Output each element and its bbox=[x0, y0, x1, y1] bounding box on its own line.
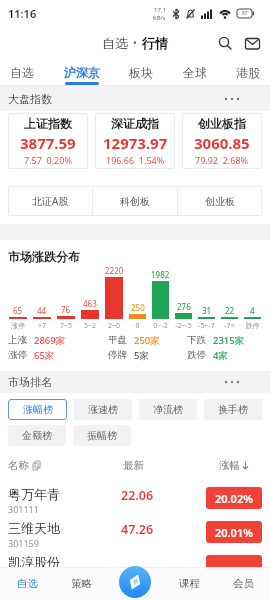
button[interactable]: 沪深京 bbox=[64, 59, 100, 85]
button[interactable]: 涨幅榜 bbox=[8, 399, 67, 420]
button[interactable]: 课程 bbox=[162, 567, 216, 600]
staticText: 平盘 bbox=[108, 334, 127, 346]
staticText: 最新 bbox=[123, 459, 144, 472]
button[interactable]: 全球 bbox=[183, 59, 207, 85]
staticText: >7 bbox=[30, 321, 54, 331]
staticText: 2~0 bbox=[102, 321, 126, 331]
staticText: 65 bbox=[13, 305, 23, 316]
button[interactable]: 涨速榜 bbox=[74, 399, 132, 420]
button[interactable]: 会员 bbox=[216, 567, 270, 600]
staticText: 17.1 bbox=[154, 6, 166, 14]
button[interactable] bbox=[119, 566, 151, 598]
staticText: 5家 bbox=[134, 349, 149, 362]
staticText: 下跌 bbox=[187, 334, 206, 346]
staticText: 0 bbox=[126, 321, 149, 331]
button[interactable]: 自选 bbox=[10, 59, 34, 85]
button[interactable]: 三维天地 bbox=[8, 517, 262, 551]
staticText: 创业板指 bbox=[198, 116, 246, 131]
staticText: 12973.97 bbox=[103, 133, 168, 153]
staticText: 涨幅榜 bbox=[23, 403, 53, 416]
button[interactable]: 科创板 bbox=[93, 186, 177, 216]
button[interactable]: 北证A股 bbox=[8, 186, 92, 216]
staticText: 20.01% bbox=[215, 525, 253, 540]
button[interactable]: 振幅榜 bbox=[73, 425, 131, 446]
staticText: 凯淳股份 bbox=[8, 554, 60, 570]
staticText: 创业板 bbox=[205, 195, 235, 208]
staticText: 31 bbox=[202, 305, 212, 316]
staticText: 65家 bbox=[34, 349, 55, 362]
button[interactable]: 上证指数 bbox=[8, 113, 88, 169]
staticText: 金额榜 bbox=[22, 429, 52, 442]
staticText: 涨速榜 bbox=[88, 403, 118, 416]
staticText: 名称 bbox=[8, 459, 29, 472]
staticText: 463 bbox=[83, 298, 97, 309]
button[interactable]: 策略 bbox=[54, 567, 108, 600]
staticText: 250家 bbox=[134, 334, 160, 347]
staticText: 上证指数 bbox=[24, 116, 72, 131]
button[interactable] bbox=[245, 37, 260, 50]
staticText: 2315家 bbox=[213, 334, 245, 347]
staticText: 课程 bbox=[179, 577, 200, 590]
staticText: 北证A股 bbox=[32, 194, 69, 208]
staticText: 行情 bbox=[142, 35, 168, 51]
staticText: 4家 bbox=[213, 349, 228, 362]
staticText: 沪深京 bbox=[64, 65, 100, 80]
staticText: 跌停 bbox=[241, 321, 264, 330]
staticText: 44 bbox=[37, 305, 47, 316]
staticText: 2220 bbox=[105, 265, 124, 276]
staticText: 涨停 bbox=[6, 321, 30, 330]
staticText: 276 bbox=[177, 301, 191, 312]
button[interactable]: 金额榜 bbox=[8, 425, 66, 446]
button[interactable] bbox=[218, 36, 232, 50]
staticText: 301111 bbox=[8, 503, 39, 515]
button[interactable]: 港股 bbox=[236, 59, 260, 85]
staticText: 自选 bbox=[10, 65, 34, 80]
staticText: 47.26 bbox=[121, 521, 154, 538]
button[interactable]: 自选 bbox=[0, 567, 54, 600]
button[interactable]: 粤万年青 bbox=[8, 483, 262, 517]
staticText: 自选 bbox=[102, 35, 128, 51]
staticText: 20.02% bbox=[215, 491, 253, 506]
staticText: 跌停 bbox=[187, 349, 206, 361]
button[interactable]: 凯淳股份 bbox=[8, 551, 262, 585]
staticText: 科创板 bbox=[120, 195, 150, 208]
staticText: 22 bbox=[225, 305, 235, 316]
staticText: 87 bbox=[242, 10, 248, 17]
staticText: 4 bbox=[250, 305, 255, 316]
button[interactable]: 深证成指 bbox=[95, 113, 175, 169]
staticText: 上涨 bbox=[8, 334, 27, 346]
staticText: 大盘指数 bbox=[8, 92, 52, 106]
staticText: -7< bbox=[218, 321, 241, 331]
button[interactable]: 换手榜 bbox=[204, 399, 262, 420]
staticText: 全球 bbox=[183, 65, 207, 80]
staticText: 7~5 bbox=[54, 321, 78, 331]
button[interactable]: 板块 bbox=[129, 59, 153, 85]
staticText: 策略 bbox=[71, 577, 92, 590]
staticText: 5~2 bbox=[78, 321, 102, 331]
staticText: 板块 bbox=[129, 65, 153, 80]
button[interactable] bbox=[224, 97, 240, 101]
staticText: 22.06 bbox=[121, 487, 154, 504]
staticText: -5~-7 bbox=[195, 321, 218, 331]
staticText: 三维天地 bbox=[8, 520, 60, 536]
staticText: 301159 bbox=[8, 537, 39, 549]
staticText: 自选 bbox=[17, 577, 38, 590]
staticText: 2869家 bbox=[34, 334, 66, 347]
staticText: 振幅榜 bbox=[87, 429, 117, 442]
staticText: 港股 bbox=[236, 65, 260, 80]
staticText: KB/s bbox=[153, 14, 166, 22]
staticText: 0~-2 bbox=[149, 321, 172, 331]
button[interactable]: 创业板指 bbox=[182, 113, 262, 169]
button[interactable]: 净流榜 bbox=[139, 399, 197, 420]
staticText: 3060.85 bbox=[194, 133, 250, 153]
staticText: 换手榜 bbox=[218, 403, 248, 416]
button[interactable]: 创业板 bbox=[178, 186, 262, 216]
staticText: 3877.59 bbox=[20, 133, 76, 153]
staticText: 深证成指 bbox=[111, 116, 159, 131]
staticText: 250 bbox=[131, 302, 145, 313]
staticText: 会员 bbox=[233, 577, 254, 590]
button[interactable] bbox=[224, 380, 240, 384]
staticText: 7.57 0.20% bbox=[24, 154, 72, 166]
staticText: 粤万年青 bbox=[8, 486, 60, 502]
staticText: 涨停 bbox=[8, 349, 27, 361]
